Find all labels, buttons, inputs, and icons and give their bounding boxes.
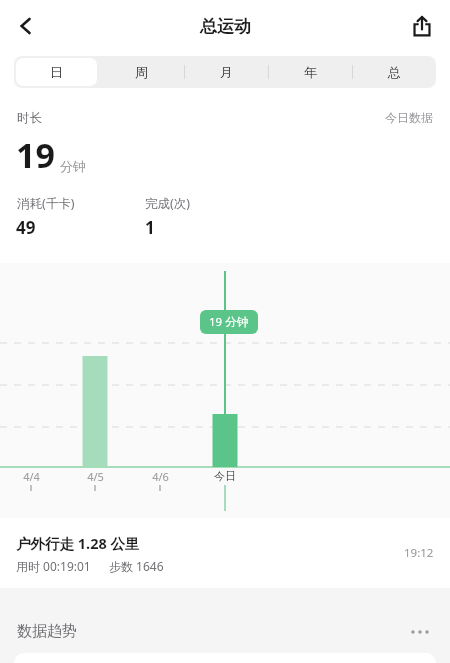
- staticText: 今日数据: [385, 110, 433, 125]
- staticText: 19: [16, 132, 55, 178]
- staticText: 消耗(千卡): [17, 195, 75, 212]
- staticText: 月: [220, 64, 233, 80]
- staticText: 49: [16, 216, 36, 239]
- staticText: 用时 00:19:01: [16, 558, 91, 574]
- button[interactable]: 总: [352, 56, 436, 88]
- staticText: 年: [304, 64, 317, 80]
- staticText: 4/5: [87, 469, 104, 484]
- button[interactable]: 月: [184, 56, 268, 88]
- button[interactable]: 年: [268, 56, 352, 88]
- staticText: 数据趋势: [17, 622, 77, 641]
- staticText: 19 分钟: [209, 314, 249, 330]
- staticText: 总: [388, 64, 401, 80]
- button[interactable]: 周: [99, 56, 184, 88]
- staticText: 4/4: [23, 469, 40, 484]
- button[interactable]: Back: [6, 6, 46, 46]
- staticText: 日: [50, 64, 63, 80]
- staticText: 周: [135, 64, 148, 80]
- staticText: 步数 1646: [109, 558, 164, 574]
- staticText: 完成(次): [145, 195, 191, 212]
- staticText: 总运动: [200, 16, 251, 37]
- staticText: 19:12: [404, 545, 434, 561]
- staticText: 1: [145, 216, 155, 239]
- staticText: 分钟: [60, 158, 86, 174]
- staticText: 今日: [214, 469, 236, 483]
- button[interactable]: More options: [404, 616, 436, 648]
- staticText: 4/6: [152, 469, 169, 484]
- button[interactable]: 日: [14, 56, 99, 88]
- button[interactable]: Share: [402, 6, 442, 46]
- button[interactable]: 19 分钟: [209, 314, 249, 330]
- button[interactable]: 户外行走 1.28 公里: [0, 518, 450, 588]
- staticText: 户外行走 1.28 公里: [16, 533, 140, 553]
- staticText: 时长: [17, 110, 42, 126]
